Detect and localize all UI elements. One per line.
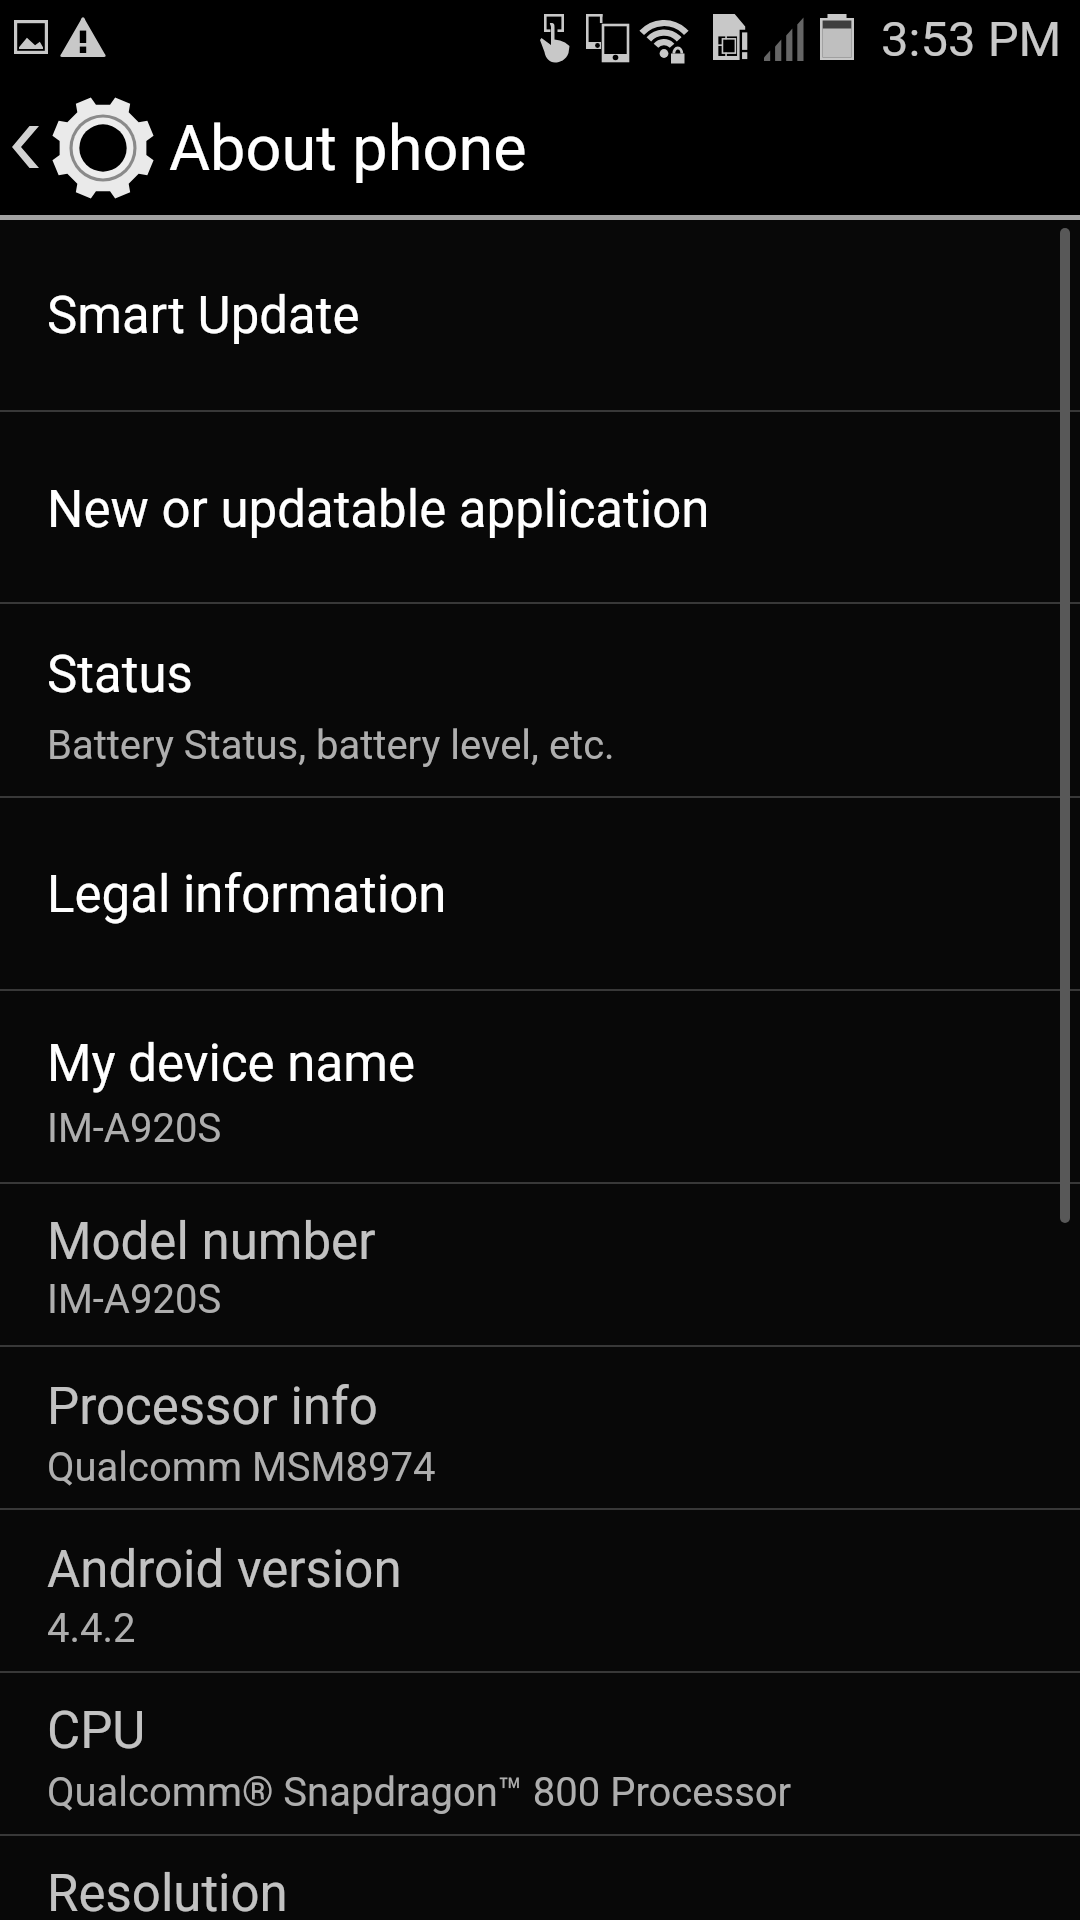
button[interactable]: Smart Update <box>0 220 1080 410</box>
staticText: Android version <box>47 1540 402 1600</box>
staticText: Processor info <box>47 1377 378 1437</box>
button[interactable]: My device name <box>0 991 1080 1182</box>
staticText: Legal information <box>47 865 447 925</box>
staticText: CPU <box>47 1701 146 1761</box>
staticText: 3:53 PM <box>881 11 1062 68</box>
staticText: Resolution <box>47 1864 288 1920</box>
button[interactable]: Android version <box>0 1510 1080 1671</box>
button[interactable]: CPU <box>0 1673 1080 1834</box>
staticText: IM-A920S <box>47 1276 222 1323</box>
staticText: Smart Update <box>47 286 360 346</box>
staticText: Qualcomm® Snapdragon™ 800 Processor <box>47 1769 792 1816</box>
staticText: About phone <box>169 112 527 186</box>
staticText: Qualcomm MSM8974 <box>47 1444 436 1491</box>
button[interactable]: Status <box>0 604 1080 796</box>
button[interactable]: Resolution <box>0 1836 1080 1920</box>
button[interactable]: New or updatable application <box>0 412 1080 602</box>
staticText: 4.4.2 <box>47 1605 136 1652</box>
button[interactable]: Back to Settings <box>0 90 1080 215</box>
staticText: Status <box>47 645 193 705</box>
button[interactable]: Processor info <box>0 1347 1080 1508</box>
staticText: New or updatable application <box>47 480 710 540</box>
staticText: IM-A920S <box>47 1105 222 1152</box>
staticText: Model number <box>47 1212 376 1272</box>
button[interactable]: Model number <box>0 1184 1080 1345</box>
staticText: My device name <box>47 1034 415 1094</box>
staticText: Battery Status, battery level, etc. <box>47 722 615 769</box>
button[interactable]: Legal information <box>0 798 1080 989</box>
